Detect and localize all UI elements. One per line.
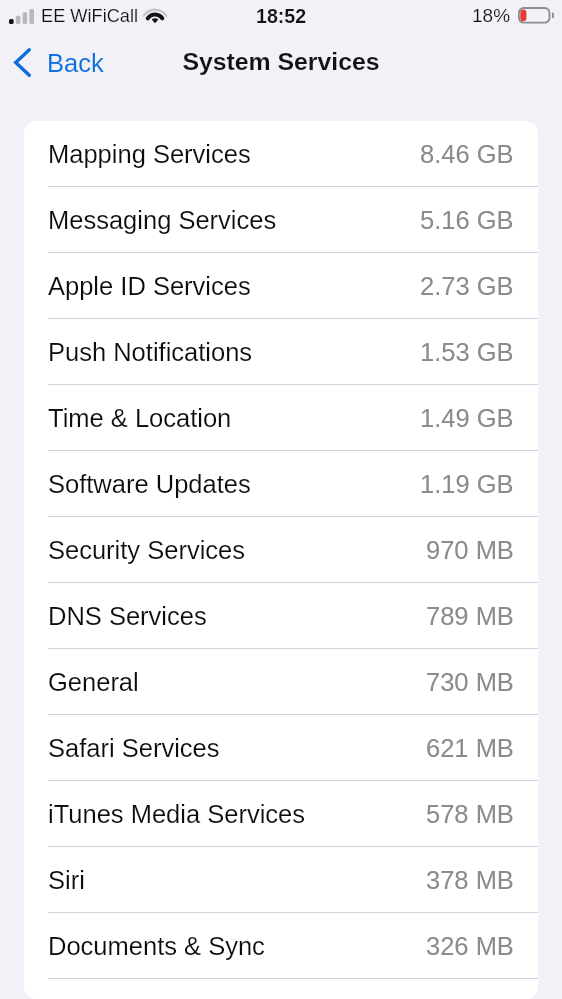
staticText: Mapping Services [48, 140, 251, 168]
staticText: Apple ID Services [48, 272, 251, 300]
button[interactable]: Time & Location [24, 385, 538, 451]
button[interactable]: Push Notifications [24, 319, 538, 385]
staticText: 8.46 GB [420, 140, 514, 168]
button[interactable]: Safari Services [24, 715, 538, 781]
button[interactable]: Apple ID Services [24, 253, 538, 319]
button[interactable]: Software Updates [24, 451, 538, 517]
button[interactable]: Back [0, 43, 114, 82]
staticText: 730 MB [426, 668, 514, 696]
button[interactable]: General [24, 649, 538, 715]
button[interactable]: Messaging Services [24, 187, 538, 253]
staticText: Time & Location [48, 404, 232, 432]
staticText: Safari Services [48, 734, 220, 762]
button[interactable]: Siri [24, 847, 538, 913]
staticText: 1.49 GB [420, 404, 514, 432]
staticText: Push Notifications [48, 338, 253, 366]
button[interactable]: DNS Services [24, 583, 538, 649]
staticText: 326 MB [426, 932, 514, 960]
staticText: System Services [182, 48, 380, 76]
staticText: 18% [472, 5, 511, 26]
button[interactable]: Security Services [24, 517, 538, 583]
staticText: 18:52 [256, 5, 307, 27]
staticText: 578 MB [426, 800, 514, 828]
staticText: 970 MB [426, 536, 514, 564]
staticText: Back [47, 49, 104, 77]
staticText: 5.16 GB [420, 206, 514, 234]
staticText: 378 MB [426, 866, 514, 894]
staticText: 789 MB [426, 602, 514, 630]
staticText: DNS Services [48, 602, 207, 630]
staticText: 621 MB [426, 734, 514, 762]
button[interactable]: iTunes Media Services [24, 781, 538, 847]
staticText: EE WiFiCall [41, 6, 139, 26]
staticText: 1.19 GB [420, 470, 514, 498]
staticText: iTunes Media Services [48, 800, 305, 828]
button[interactable]: Mapping Services [24, 121, 538, 187]
other: Back [14, 48, 31, 77]
staticText: Software Updates [48, 470, 251, 498]
staticText: Messaging Services [48, 206, 277, 234]
staticText: Siri [48, 866, 85, 894]
staticText: Security Services [48, 536, 245, 564]
staticText: 2.73 GB [420, 272, 514, 300]
staticText: Documents & Sync [48, 932, 265, 960]
staticText: General [48, 668, 139, 696]
button[interactable]: Documents & Sync [24, 913, 538, 979]
staticText: 1.53 GB [420, 338, 514, 366]
